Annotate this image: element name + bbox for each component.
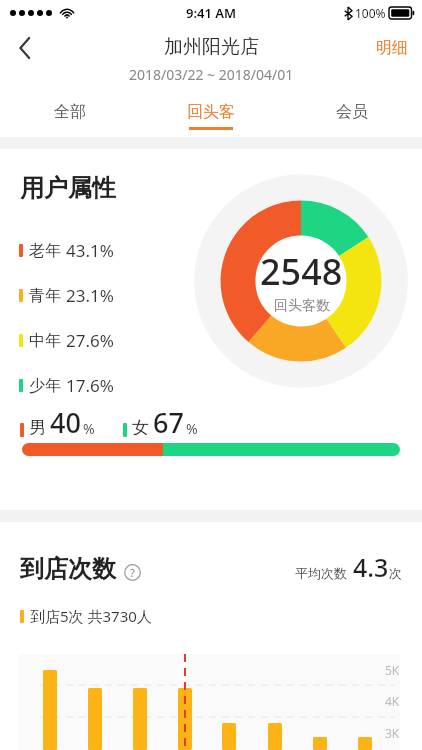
button[interactable]: 会员 [281, 95, 422, 137]
staticText: 少年 [29, 376, 61, 396]
staticText: 43.1% [66, 239, 114, 262]
staticText: 17.6% [66, 374, 114, 397]
staticText: 到店次数 [20, 554, 116, 584]
staticText: 5K [385, 662, 400, 678]
staticText: 40 [50, 404, 81, 441]
staticText: 老年 [29, 241, 61, 261]
staticText: 平均次数 [295, 565, 347, 581]
button[interactable]: 明细 [362, 26, 422, 70]
staticText: 青年 [29, 286, 61, 306]
staticText: 回头客 [187, 102, 235, 122]
staticText: % [186, 419, 198, 438]
staticText: 27.6% [66, 329, 114, 352]
staticText: 2548 [260, 247, 343, 296]
staticText: ? [130, 565, 135, 580]
button[interactable]: Help [124, 564, 141, 581]
button[interactable]: 回头客 [140, 95, 281, 137]
staticText: 加州阳光店 [164, 35, 259, 59]
staticText: 23.1% [66, 284, 114, 307]
staticText: 67 [153, 404, 184, 441]
staticText: 3K [385, 725, 400, 741]
staticText: 到店5次 共3730人 [30, 606, 152, 626]
staticText: 100% [355, 5, 386, 21]
staticText: 9:41 AM [186, 4, 237, 22]
staticText: 用户属性 [20, 173, 116, 203]
staticText: 明细 [376, 38, 408, 58]
button[interactable]: 全部 [0, 95, 140, 137]
staticText: 女 [132, 417, 149, 438]
staticText: 4.3 [353, 550, 389, 584]
staticText: 会员 [336, 102, 368, 122]
staticText: 次 [389, 565, 402, 581]
staticText: % [83, 419, 95, 438]
staticText: 全部 [54, 102, 86, 122]
staticText: 回头客数 [274, 297, 330, 315]
staticText: 2018/03/22 ~ 2018/04/01 [129, 65, 294, 84]
staticText: 男 [29, 417, 46, 438]
staticText: 4K [385, 693, 400, 709]
staticText: 中年 [29, 331, 61, 351]
button[interactable]: Back [0, 26, 50, 70]
